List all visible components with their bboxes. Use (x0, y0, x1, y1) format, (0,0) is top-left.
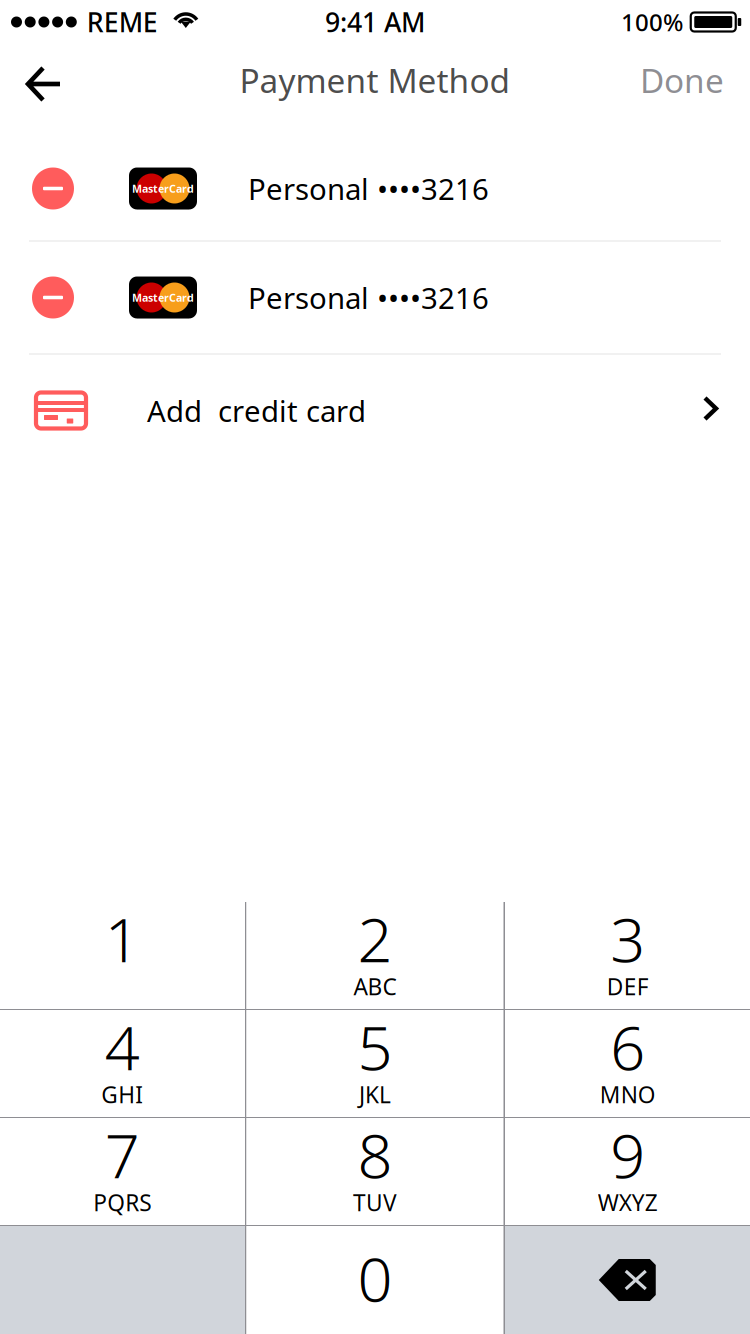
button[interactable]: Back (12, 46, 76, 114)
button[interactable]: 3 (505, 902, 750, 1009)
staticText: MasterCard (132, 181, 194, 196)
staticText: 7 (105, 1114, 140, 1195)
staticText: 3 (610, 898, 645, 979)
button[interactable]: 0 (246, 1226, 503, 1334)
button[interactable]: Delete (505, 1226, 750, 1334)
staticText: PQRS (93, 1187, 151, 1217)
button[interactable]: 8 (246, 1118, 503, 1225)
staticText: JKL (359, 1079, 391, 1109)
staticText: 6 (610, 1006, 645, 1087)
staticText: 2 (357, 898, 392, 979)
staticText: Personal ••••3216 (248, 278, 489, 317)
button[interactable]: 1 (0, 902, 245, 1009)
button[interactable]: 6 (505, 1010, 750, 1117)
staticText: TUV (353, 1187, 397, 1217)
staticText: GHI (101, 1079, 143, 1109)
staticText: MasterCard (132, 290, 194, 305)
button[interactable]: Add credit card (0, 355, 750, 466)
staticText: 9:41 AM (325, 4, 425, 40)
button[interactable]: 9 (505, 1118, 750, 1225)
staticText: Payment Method (239, 58, 510, 102)
staticText: WXYZ (598, 1187, 658, 1217)
staticText: 1 (105, 898, 140, 979)
button[interactable]: 4 (0, 1010, 245, 1117)
staticText: 0 (357, 1237, 392, 1319)
staticText: 9 (610, 1114, 645, 1195)
staticText: 100% (621, 6, 683, 38)
button[interactable]: 7 (0, 1118, 245, 1225)
staticText: 8 (357, 1114, 392, 1195)
staticText: 5 (357, 1006, 392, 1087)
staticText: Done (640, 58, 724, 102)
button[interactable]: Done (626, 42, 738, 118)
button[interactable]: MasterCard (0, 242, 750, 353)
staticText: REME (87, 4, 158, 40)
staticText: MNO (600, 1079, 656, 1109)
button[interactable]: 5 (246, 1010, 503, 1117)
staticText: Personal ••••3216 (248, 169, 489, 208)
staticText: DEF (607, 971, 649, 1001)
button[interactable]: MasterCard (0, 137, 750, 240)
staticText: Add credit card (147, 391, 366, 430)
staticText: 4 (105, 1006, 140, 1087)
button[interactable]: 2 (246, 902, 503, 1009)
staticText: ABC (353, 971, 396, 1001)
